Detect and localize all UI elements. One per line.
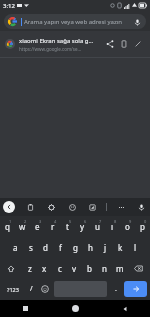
button[interactable]: 9 [120, 216, 135, 237]
button[interactable]: Home [50, 300, 100, 317]
button[interactable]: 6 [75, 216, 90, 237]
button[interactable]: Back [100, 300, 150, 317]
staticText: e [35, 221, 40, 232]
staticText: . [115, 284, 117, 294]
button[interactable]: Back [3, 201, 15, 213]
button[interactable]: 1 [0, 216, 15, 237]
staticText: ı [111, 221, 114, 232]
staticText: y [80, 221, 85, 232]
staticText: h [88, 242, 93, 253]
button[interactable]: Translate [86, 201, 98, 213]
button[interactable]: f [53, 237, 68, 258]
button[interactable]: xiaomi Ekran sağa sola g… [0, 31, 150, 57]
staticText: w [19, 221, 26, 232]
staticText: d [43, 242, 48, 253]
button[interactable]: s [23, 237, 38, 258]
staticText: xiaomi Ekran sağa sola g… [19, 37, 94, 45]
staticText: 6 [84, 219, 87, 224]
button[interactable]: j [98, 237, 113, 258]
button[interactable]: a [7, 237, 23, 258]
staticText: 3:12 [3, 2, 15, 10]
button[interactable]: z [22, 258, 37, 279]
button[interactable]: Recents [0, 300, 50, 317]
staticText: n [102, 263, 107, 274]
button[interactable]: m [112, 258, 127, 279]
button[interactable]: Edit [131, 37, 145, 51]
button[interactable]: Emoji [38, 281, 52, 297]
staticText: c [58, 263, 62, 274]
button[interactable]: Voice input [135, 201, 147, 213]
staticText: z [28, 263, 32, 274]
staticText: u [95, 221, 100, 232]
button[interactable]: 0 [135, 216, 150, 237]
staticText: Arama yapın veya web adresi yazın [24, 18, 130, 26]
button[interactable]: 4 [45, 216, 60, 237]
button[interactable]: b [82, 258, 97, 279]
button[interactable]: d [38, 237, 53, 258]
button[interactable]: n [97, 258, 112, 279]
staticText: q [5, 221, 10, 232]
button[interactable]: Settings [45, 201, 57, 213]
button[interactable]: Voice search [132, 17, 142, 27]
staticText: o [125, 221, 130, 232]
staticText: t [66, 221, 69, 232]
staticText: / [30, 284, 33, 294]
button[interactable]: More [115, 201, 127, 213]
staticText: 0 [144, 219, 147, 224]
staticText: 4 [54, 219, 57, 224]
button[interactable]: x [37, 258, 52, 279]
staticText: l [134, 242, 137, 253]
staticText: 5 [69, 219, 72, 224]
button[interactable]: Shift [0, 258, 22, 279]
button[interactable]: Arama yapın veya web adresi yazın [4, 14, 146, 29]
staticText: g [73, 242, 78, 253]
staticText: ?123 [7, 286, 19, 293]
button[interactable]: / [24, 281, 38, 297]
button[interactable]: Stickers [66, 201, 78, 213]
button[interactable]: . [109, 281, 123, 297]
staticText: x [42, 263, 47, 274]
button[interactable]: c [52, 258, 67, 279]
button[interactable]: v [67, 258, 82, 279]
staticText: k [118, 242, 123, 253]
staticText: p [140, 221, 145, 232]
button[interactable]: k [113, 237, 128, 258]
staticText: j [104, 242, 107, 253]
button[interactable]: 5 [60, 216, 75, 237]
button[interactable]: g [68, 237, 83, 258]
staticText: 1 [9, 219, 12, 224]
staticText: m [116, 263, 124, 274]
button[interactable]: Share [103, 37, 117, 51]
button[interactable]: h [83, 237, 98, 258]
staticText: r [51, 221, 55, 232]
staticText: v [72, 263, 77, 274]
button[interactable]: Go [124, 281, 147, 297]
staticText: 8 [114, 219, 117, 224]
button[interactable]: Copy [117, 37, 131, 51]
staticText: https://www.google.com/se… [19, 46, 82, 52]
staticText: f [59, 242, 62, 253]
staticText: 2 [24, 219, 27, 224]
button[interactable]: l [128, 237, 143, 258]
staticText: 9 [129, 219, 132, 224]
button[interactable]: ?123 [2, 281, 24, 297]
button[interactable]: 7 [90, 216, 105, 237]
button[interactable]: 2 [15, 216, 30, 237]
staticText: 3 [39, 219, 42, 224]
staticText: b [87, 263, 92, 274]
button[interactable]: 8 [105, 216, 120, 237]
button[interactable]: Backspace [127, 258, 150, 279]
staticText: s [29, 242, 33, 253]
staticText: 7 [99, 219, 102, 224]
button[interactable]: Clipboard [24, 201, 36, 213]
staticText: a [13, 242, 18, 253]
button[interactable]: 3 [30, 216, 45, 237]
